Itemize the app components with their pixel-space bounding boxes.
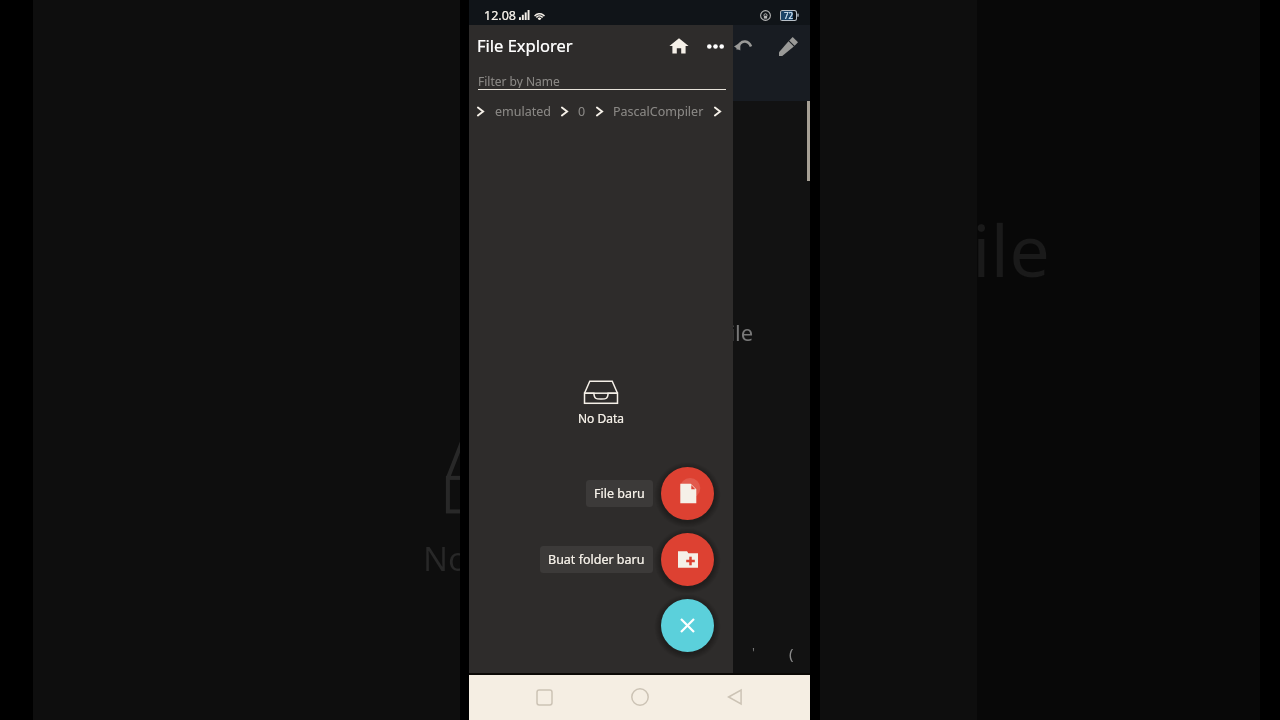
button[interactable]: File baru (661, 467, 714, 520)
staticText: PascalCompiler (613, 103, 704, 120)
button[interactable]: Root (471, 101, 490, 121)
staticText: File (718, 317, 754, 347)
button[interactable]: Close menu (661, 599, 714, 652)
button[interactable]: More options (700, 31, 730, 61)
staticText: No Data (578, 410, 625, 426)
button[interactable]: 0 (573, 101, 591, 121)
button[interactable]: File baru (586, 480, 653, 507)
button[interactable]: emulated (490, 101, 556, 121)
button[interactable]: Undo (725, 28, 761, 64)
staticText: Filter by Name (478, 73, 560, 88)
staticText: 72 (784, 10, 794, 21)
staticText: ' (752, 643, 755, 661)
staticText: ile (972, 200, 1050, 298)
staticText: File Explorer (477, 34, 573, 56)
staticText: 0 (578, 103, 586, 120)
button[interactable]: Home (619, 676, 661, 718)
staticText: Buat folder baru (548, 551, 645, 568)
button[interactable]: Buat folder baru (540, 546, 653, 573)
button[interactable]: Back (714, 676, 756, 718)
staticText: 12.08 (484, 7, 516, 24)
button[interactable]: PascalCompiler (608, 101, 709, 121)
button[interactable]: Home (663, 30, 695, 62)
button[interactable]: Edit (770, 28, 806, 64)
staticText: emulated (495, 103, 551, 120)
staticText: File baru (594, 485, 645, 502)
staticText: ( (789, 643, 794, 663)
button[interactable]: Recents (523, 676, 565, 718)
staticText: No Data (423, 536, 550, 581)
button[interactable]: Buat folder baru (661, 533, 714, 586)
